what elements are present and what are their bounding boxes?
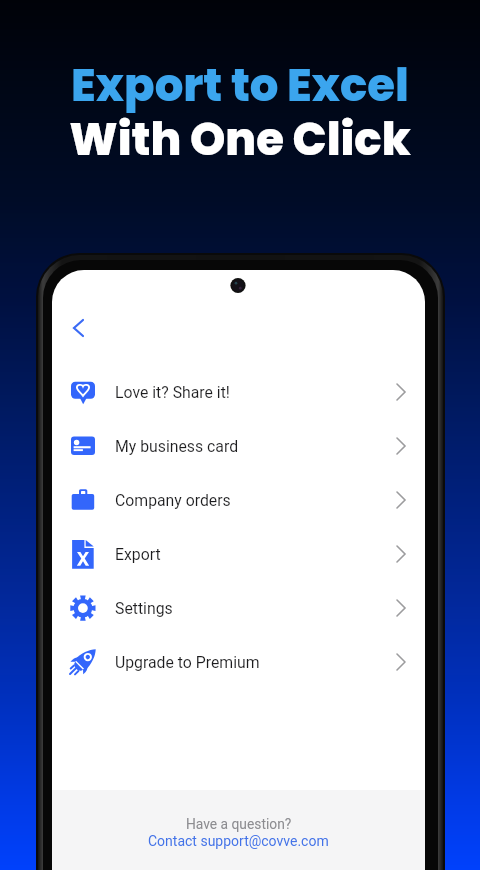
button[interactable]: Contact support@covve.com [148, 833, 329, 849]
staticText: My business card [115, 437, 239, 456]
staticText: Export [115, 545, 161, 564]
staticText: Upgrade to Premium [115, 653, 260, 672]
button[interactable]: Love it? Share it! [52, 365, 425, 419]
staticText: Have a question? [186, 816, 292, 832]
staticText: Contact support@covve.com [148, 833, 329, 849]
button[interactable]: Back [56, 306, 100, 350]
button[interactable]: My business card [52, 419, 425, 473]
staticText: Love it? Share it! [115, 383, 230, 402]
staticText: Export to Excel [71, 54, 409, 117]
button[interactable]: Settings [52, 581, 425, 635]
button[interactable]: Export [52, 527, 425, 581]
button[interactable]: Upgrade to Premium [52, 635, 425, 689]
staticText: Company orders [115, 491, 231, 510]
staticText: With One Click [69, 108, 411, 171]
button[interactable]: Company orders [52, 473, 425, 527]
staticText: Settings [115, 599, 173, 618]
